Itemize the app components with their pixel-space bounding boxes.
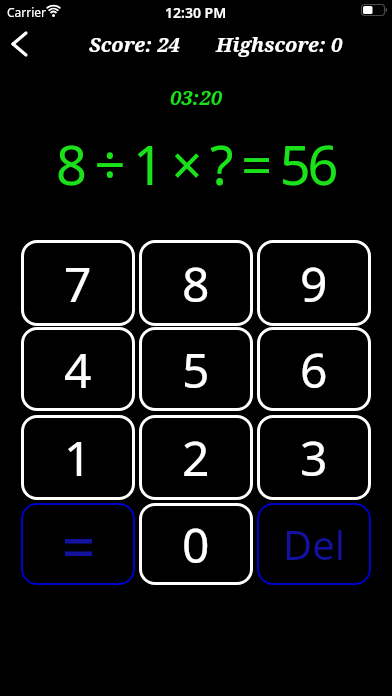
staticText: 9 [300, 251, 328, 316]
staticText: Carrier [7, 4, 47, 20]
staticText: 8 ÷ 1 × ? = 56 [56, 127, 336, 191]
staticText: 2 [182, 425, 210, 490]
staticText: 8 [182, 251, 210, 316]
button[interactable] [6, 31, 34, 57]
button[interactable]: 4 [21, 327, 135, 411]
staticText: 0 [182, 512, 210, 577]
staticText: Score: 24 [89, 31, 180, 58]
button[interactable]: 5 [139, 327, 253, 411]
staticText: 3 [300, 425, 328, 490]
staticText: 03:20 [170, 84, 222, 110]
staticText: 1 [64, 425, 92, 490]
button[interactable]: Del [257, 503, 371, 585]
staticText: Del [283, 517, 346, 571]
button[interactable]: 6 [257, 327, 371, 411]
button[interactable] [21, 503, 135, 585]
button[interactable]: 0 [139, 503, 253, 585]
staticText: 4 [64, 337, 92, 402]
button[interactable]: 8 [139, 240, 253, 326]
button[interactable]: 9 [257, 240, 371, 326]
staticText: 6 [300, 337, 328, 402]
button[interactable]: 3 [257, 415, 371, 500]
button[interactable]: 1 [21, 415, 135, 500]
button[interactable]: 2 [139, 415, 253, 500]
staticText: Highscore: 0 [216, 31, 343, 58]
staticText: 7 [64, 251, 92, 316]
button[interactable]: 7 [21, 240, 135, 326]
staticText: 5 [182, 337, 210, 402]
staticText: 12:30 PM [165, 3, 227, 22]
